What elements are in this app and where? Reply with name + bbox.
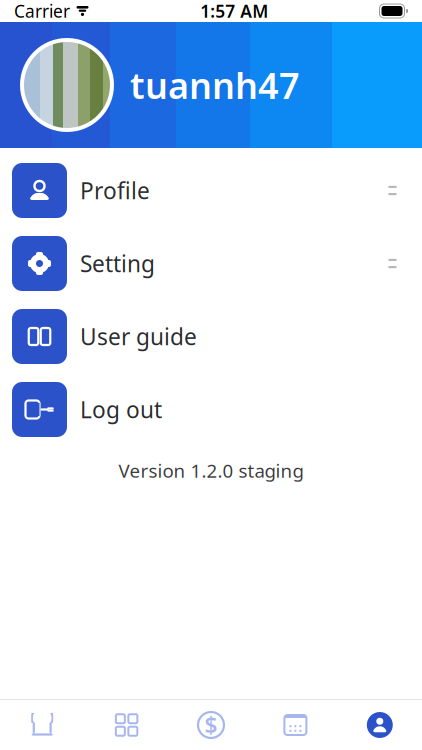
- button[interactable]: User guide: [0, 309, 422, 364]
- button[interactable]: Profile: [0, 163, 422, 218]
- staticText: Carrier: [14, 0, 70, 22]
- button[interactable]: Home: [0, 700, 84, 750]
- staticText: Profile: [80, 175, 150, 205]
- staticText: Setting: [80, 248, 155, 278]
- button[interactable]: Account: [338, 700, 422, 750]
- button[interactable]: Log out: [0, 382, 422, 437]
- staticText: 1:57 AM: [200, 0, 268, 22]
- button[interactable]: Categories: [84, 700, 169, 750]
- staticText: $: [204, 710, 217, 740]
- staticText: Log out: [80, 394, 162, 424]
- button[interactable]: Calendar: [253, 700, 338, 750]
- staticText: Version 1.2.0 staging: [118, 458, 303, 483]
- button[interactable]: Setting: [0, 236, 422, 291]
- staticText: User guide: [80, 321, 197, 351]
- button[interactable]: Payments: [169, 700, 253, 750]
- staticText: tuannh47: [130, 61, 300, 109]
